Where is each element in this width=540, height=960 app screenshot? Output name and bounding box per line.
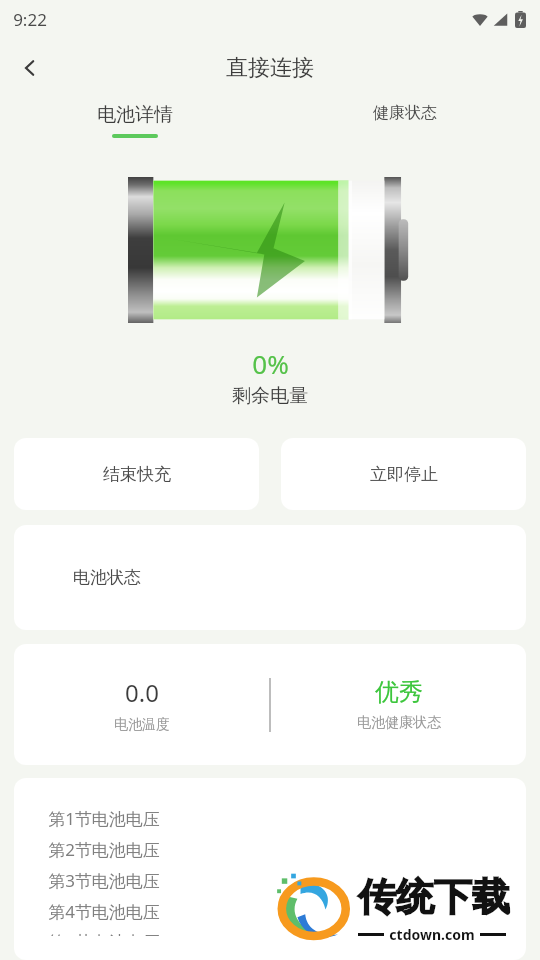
staticText: 电池状态 [73,567,141,588]
button[interactable]: 电池状态 [14,525,526,630]
button[interactable]: 第2节电池电压 [48,837,526,861]
button[interactable]: 第3节电池电压 [48,868,526,892]
button[interactable]: 结束快充 [14,438,259,510]
button[interactable]: 健康状态 [270,98,540,154]
staticText: 0% [252,346,289,381]
staticText: 电池健康状态 [357,714,441,732]
staticText: 优秀 [375,677,423,707]
staticText: 电池温度 [114,716,170,734]
staticText: 第2节电池电压 [48,838,160,861]
staticText: ctdown.com [389,925,475,944]
button[interactable]: 返回 [8,46,52,90]
staticText: 结束快充 [103,464,171,485]
staticText: 第3节电池电压 [48,869,160,892]
button[interactable]: 立即停止 [281,438,526,510]
staticText: 直接连接 [226,54,314,82]
button[interactable]: 第1节电池电压 [48,806,526,830]
staticText: 第1节电池电压 [48,807,160,830]
staticText: 传统下载 [358,873,510,921]
staticText: 电池详情 [97,103,173,127]
staticText: 第4节电池电压 [48,900,160,923]
button[interactable]: 第5节电池电压 [48,930,526,936]
staticText: 0.0 [125,676,159,709]
button[interactable]: 电池详情 [0,98,270,154]
staticText: 9:22 [13,8,47,31]
staticText: 剩余电量 [232,384,308,408]
staticText: 健康状态 [373,103,437,123]
button[interactable]: 第4节电池电压 [48,899,526,923]
staticText: 第5节电池电压 [48,930,160,936]
staticText: 立即停止 [370,464,438,485]
